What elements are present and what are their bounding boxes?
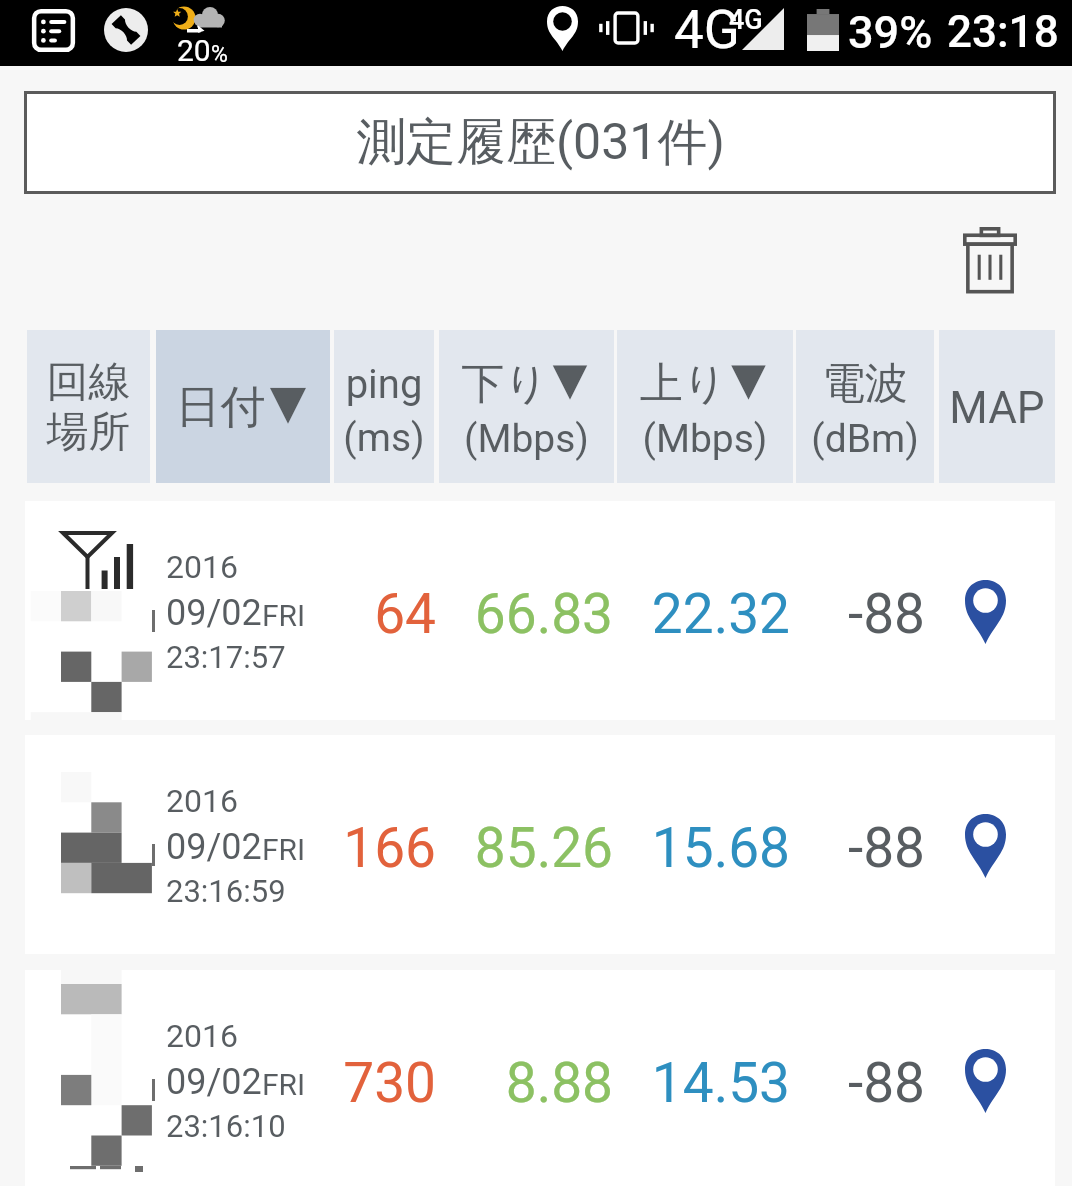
staticText: 8.88 bbox=[505, 1051, 613, 1115]
staticText: 電波 bbox=[796, 357, 934, 411]
button[interactable]: 2016 bbox=[25, 501, 1055, 720]
staticText: 14.53 bbox=[651, 1051, 790, 1115]
staticText: 39% bbox=[848, 6, 933, 59]
staticText: 22.32 bbox=[651, 582, 790, 646]
button[interactable]: Show on map bbox=[939, 735, 1055, 954]
staticText: 23:16:59 bbox=[166, 873, 286, 909]
staticText: 23:17:57 bbox=[166, 639, 286, 675]
staticText: 166 bbox=[343, 816, 436, 880]
staticText: -88 bbox=[847, 1051, 925, 1115]
staticText: 4G bbox=[674, 0, 740, 61]
staticText: ping bbox=[334, 361, 434, 408]
staticText: 2016 bbox=[166, 782, 238, 820]
staticText: (ms) bbox=[334, 415, 434, 461]
staticText: 23:18 bbox=[947, 6, 1059, 58]
staticText: MAP bbox=[939, 382, 1055, 434]
staticText: 66.83 bbox=[474, 582, 613, 646]
staticText: -88 bbox=[847, 816, 925, 880]
button[interactable]: 回線 bbox=[27, 330, 150, 483]
staticText: 09/02 bbox=[166, 1061, 262, 1103]
staticText: 2016 bbox=[166, 548, 238, 586]
other: Notifications bbox=[32, 9, 75, 52]
staticText: 09/02 bbox=[166, 592, 262, 634]
button[interactable]: 電波 bbox=[796, 330, 934, 483]
staticText: 上り▼ bbox=[617, 357, 793, 411]
button[interactable]: 測定履歴(031件) bbox=[24, 91, 1056, 194]
button[interactable]: 日付▼ bbox=[156, 330, 330, 483]
button[interactable]: ping bbox=[334, 330, 434, 483]
staticText: 15.68 bbox=[651, 816, 790, 880]
staticText: -88 bbox=[847, 582, 925, 646]
staticText: 23:16:10 bbox=[166, 1108, 286, 1144]
button[interactable]: 2016 bbox=[25, 735, 1055, 954]
staticText: 64 bbox=[374, 582, 436, 646]
staticText: FRI bbox=[262, 1067, 306, 1102]
button[interactable]: 2016 bbox=[25, 970, 1055, 1186]
staticText: % bbox=[211, 41, 228, 68]
staticText: (Mbps) bbox=[617, 416, 793, 462]
staticText: 4G bbox=[729, 4, 763, 36]
other: Call bbox=[104, 8, 148, 52]
staticText: 20 bbox=[177, 33, 211, 68]
staticText: 回線 bbox=[27, 356, 150, 409]
staticText: 09/02 bbox=[166, 826, 262, 868]
staticText: 2016 bbox=[166, 1017, 238, 1055]
button[interactable]: 上り▼ bbox=[617, 330, 793, 483]
button[interactable]: Show on map bbox=[939, 970, 1055, 1186]
staticText: 日付▼ bbox=[156, 379, 330, 436]
staticText: 場所 bbox=[27, 406, 150, 459]
staticText: 下り▼ bbox=[439, 357, 614, 411]
staticText: FRI bbox=[262, 598, 306, 633]
button[interactable]: MAP bbox=[939, 330, 1055, 483]
button[interactable]: Show on map bbox=[939, 501, 1055, 720]
button[interactable]: Delete history bbox=[943, 212, 1037, 308]
staticText: (Mbps) bbox=[439, 416, 614, 462]
staticText: 730 bbox=[343, 1051, 436, 1115]
button[interactable]: 下り▼ bbox=[439, 330, 614, 483]
staticText: (dBm) bbox=[796, 416, 934, 462]
staticText: FRI bbox=[262, 832, 306, 867]
staticText: 85.26 bbox=[474, 816, 613, 880]
staticText: 測定履歴(031件) bbox=[356, 111, 725, 174]
